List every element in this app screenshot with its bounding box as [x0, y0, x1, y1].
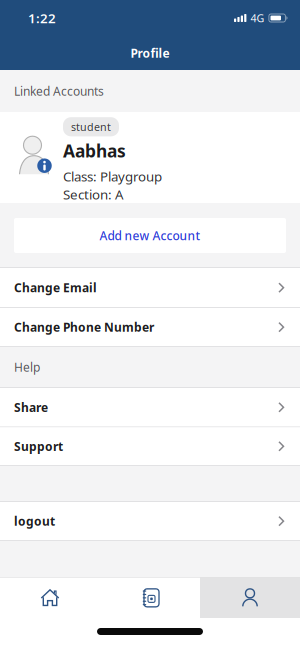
staticText: logout	[14, 513, 55, 529]
button[interactable]: Change Email	[0, 268, 300, 307]
button[interactable]: Add new Account	[14, 218, 286, 253]
staticText: Change Phone Number	[14, 319, 154, 335]
staticText: Profile	[130, 45, 169, 61]
staticText: Linked Accounts	[14, 83, 104, 99]
button[interactable]: Support	[0, 427, 300, 465]
button[interactable]: Profile	[200, 578, 300, 618]
button[interactable]: Share	[0, 388, 300, 427]
button[interactable]: Home	[0, 578, 100, 618]
button[interactable]: logout	[0, 502, 300, 540]
staticText: Help	[14, 359, 40, 375]
button[interactable]: Change Phone Number	[0, 308, 300, 346]
staticText: Section: A	[63, 186, 124, 203]
staticText: Share	[14, 399, 48, 415]
staticText: Aabhas	[63, 139, 126, 162]
staticText: 4G	[250, 11, 264, 25]
staticText: Class: Playgroup	[63, 167, 162, 185]
staticText: Support	[14, 438, 63, 454]
staticText: Change Email	[14, 280, 97, 296]
staticText: 1:22	[28, 9, 56, 27]
button[interactable]: student	[0, 112, 300, 203]
staticText: student	[71, 120, 111, 134]
staticText: Add new Account	[99, 227, 200, 243]
button[interactable]: Diary	[100, 578, 200, 618]
